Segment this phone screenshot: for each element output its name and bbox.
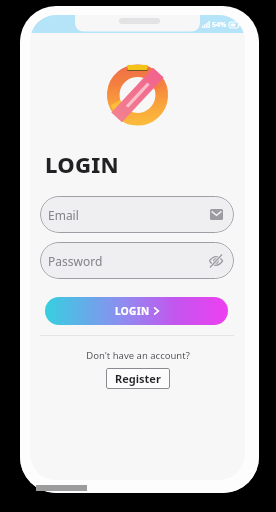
- staticText: Password: [48, 253, 103, 269]
- staticText: Email: [48, 207, 79, 223]
- other: Email: [210, 209, 223, 220]
- staticText: LOGIN: [45, 149, 119, 179]
- button[interactable]: Password: [40, 242, 234, 279]
- button[interactable]: LOGIN: [45, 297, 228, 325]
- staticText: Don't have an account?: [86, 349, 190, 362]
- button[interactable]: Email: [40, 196, 234, 233]
- other: Show password: [209, 254, 223, 268]
- staticText: LOGIN: [115, 304, 150, 318]
- staticText: 54%: [212, 20, 227, 30]
- staticText: Register: [115, 371, 161, 386]
- button[interactable]: Register: [106, 368, 170, 389]
